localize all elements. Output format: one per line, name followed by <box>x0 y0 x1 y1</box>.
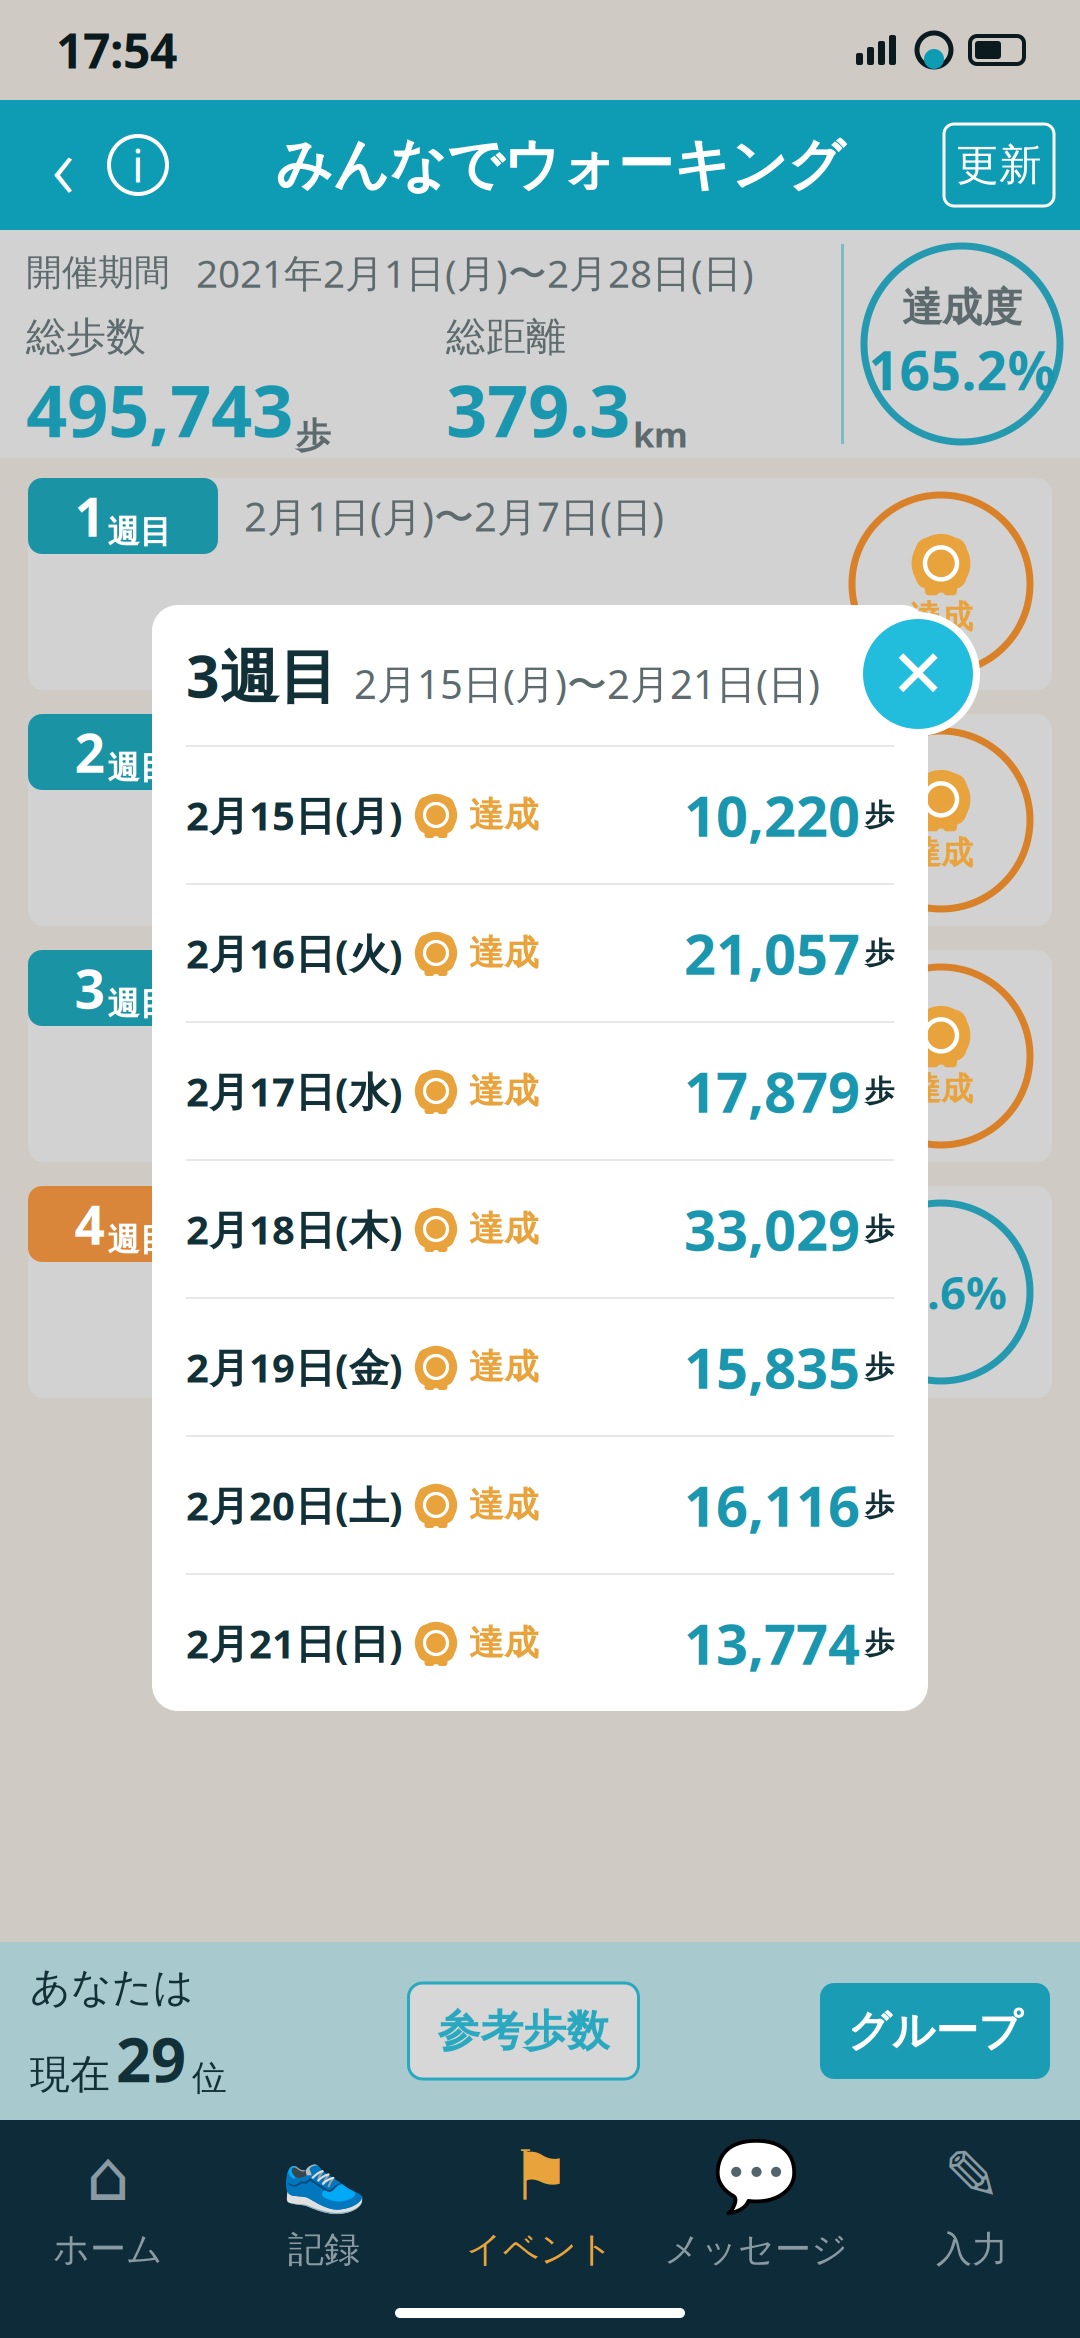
button[interactable]: 閉じる <box>856 612 980 736</box>
staticText: 1 <box>74 481 105 551</box>
staticText: 4 <box>74 1189 105 1259</box>
button[interactable]: グループ <box>820 1983 1050 2079</box>
staticText: 17,879 <box>684 1054 860 1128</box>
staticText: 👟 <box>281 2136 367 2215</box>
staticText: 歩 <box>865 1073 894 1109</box>
staticText: 歩 <box>865 1487 894 1523</box>
staticText: 入力 <box>936 2227 1008 2271</box>
staticText: 10,220 <box>684 778 860 852</box>
staticText: イベント <box>466 2227 614 2271</box>
staticText: 15,835 <box>684 1330 860 1404</box>
staticText: 2月15日(月) <box>186 788 403 841</box>
staticText: 33,029 <box>684 1192 860 1266</box>
staticText: 2月21日(日) <box>186 1616 403 1669</box>
staticText: 歩 <box>865 797 894 833</box>
staticText: 2月1日(月)〜2月7日(日) <box>244 489 664 542</box>
staticText: グループ <box>847 2005 1022 2057</box>
staticText: 2月19日(金) <box>186 1340 403 1393</box>
staticText: 達成 <box>469 932 539 974</box>
staticText: 参考歩数 <box>437 2005 609 2057</box>
staticText: 達成 <box>469 1208 539 1250</box>
staticText: 達成度 <box>902 283 1022 332</box>
staticText: ✕ <box>890 636 946 712</box>
staticText: 達成 <box>909 1069 973 1109</box>
staticText: 495,743 <box>26 361 293 457</box>
staticText: 21,057 <box>684 916 860 990</box>
staticText: 週目 <box>107 748 171 787</box>
staticText: 2月15日(月)〜2月21日(日) <box>244 961 710 1014</box>
button[interactable]: 戻る <box>26 122 100 208</box>
staticText: 歩 <box>865 935 894 971</box>
staticText: ホーム <box>53 2227 163 2271</box>
button[interactable]: 情報 <box>100 122 176 208</box>
staticText: 90.6% <box>875 1262 1007 1322</box>
staticText: 2月15日(月)〜2月21日(日) <box>354 657 820 710</box>
staticText: 歩 <box>865 1625 894 1661</box>
staticText: 29 <box>116 2018 186 2099</box>
button[interactable]: ⚑ <box>432 2120 648 2288</box>
staticText: 2 <box>74 717 105 787</box>
button[interactable]: ✎ <box>864 2120 1080 2288</box>
staticText: 2月17日(水) <box>186 1064 403 1117</box>
staticText: 2月16日(火) <box>186 926 403 979</box>
staticText: 16,116 <box>684 1468 860 1542</box>
staticText: 17:54 <box>56 18 177 82</box>
staticText: 歩 <box>865 1211 894 1247</box>
staticText: 週目 <box>107 984 171 1023</box>
staticText: ‹ <box>51 107 74 223</box>
staticText: 2月18日(木) <box>186 1202 403 1255</box>
staticText: ✎ <box>943 2136 1001 2215</box>
staticText: 達成 <box>909 597 973 637</box>
staticText: 2月22日(月)〜2月28日(日) <box>244 1197 710 1250</box>
staticText: 379.3 <box>446 361 630 457</box>
staticText: あなたは <box>30 1963 194 2012</box>
staticText: 達成 <box>469 1070 539 1112</box>
staticText: 歩 <box>865 1349 894 1385</box>
staticText: i <box>132 135 144 195</box>
staticText: 総距離 <box>446 312 566 361</box>
staticText: 13,774 <box>684 1606 860 1680</box>
staticText: 3 <box>74 953 105 1023</box>
staticText: 歩 <box>296 414 331 457</box>
staticText: 総歩数 <box>26 312 146 361</box>
staticText: 開催期間 <box>26 250 170 295</box>
staticText: 2月8日(月)〜2月14日(日) <box>244 725 687 778</box>
staticText: ⌂ <box>86 2136 130 2215</box>
staticText: 2月20日(土) <box>186 1478 403 1531</box>
staticText: 達成 <box>909 833 973 873</box>
staticText: みんなでウォーキング <box>275 131 844 199</box>
staticText: メッセージ <box>664 2227 848 2272</box>
staticText: 達成 <box>469 1346 539 1388</box>
staticText: 週目 <box>107 512 171 551</box>
staticText: 💬 <box>713 2136 799 2215</box>
staticText: 2021年2月1日(月)〜2月28日(日) <box>196 247 754 298</box>
staticText: 週目 <box>107 1220 171 1259</box>
button[interactable]: 👟 <box>216 2120 432 2288</box>
staticText: 位 <box>192 2057 227 2099</box>
button[interactable]: 💬 <box>648 2120 864 2288</box>
staticText: 3週目 <box>186 636 338 714</box>
staticText: km <box>633 411 688 457</box>
button[interactable]: ⌂ <box>0 2120 216 2288</box>
staticText: 記録 <box>288 2227 360 2272</box>
staticText: 165.2% <box>868 334 1055 405</box>
staticText: 達成 <box>469 794 539 836</box>
staticText: 現在 <box>30 2050 110 2099</box>
button[interactable]: 参考歩数 <box>408 1983 638 2079</box>
staticText: 達成 <box>469 1622 539 1664</box>
button[interactable]: 更新 <box>944 124 1054 206</box>
staticText: ⚑ <box>509 2136 571 2215</box>
staticText: 達成 <box>469 1484 539 1526</box>
staticText: 更新 <box>956 139 1042 191</box>
